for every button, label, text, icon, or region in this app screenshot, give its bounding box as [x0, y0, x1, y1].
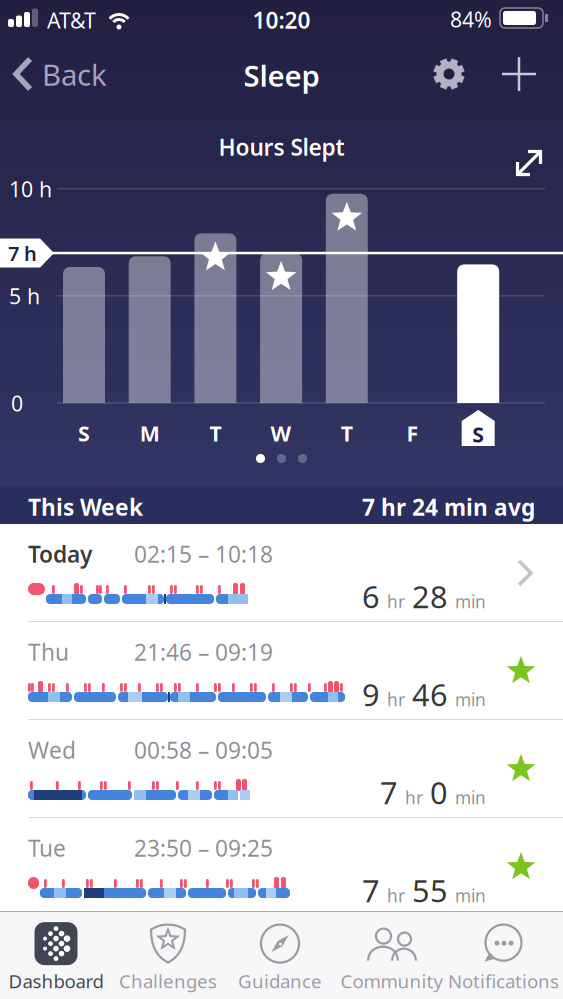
- staticText: 0: [11, 389, 23, 417]
- button[interactable]: Dashboard: [0, 916, 112, 998]
- staticText: Community: [340, 969, 443, 993]
- button[interactable]: Wed: [0, 720, 563, 818]
- staticText: M: [140, 419, 160, 447]
- staticText: min: [455, 688, 486, 711]
- button[interactable]: [497, 52, 541, 96]
- staticText: min: [455, 884, 486, 907]
- staticText: hr: [387, 884, 405, 907]
- button[interactable]: Guidance: [224, 916, 336, 998]
- staticText: T: [341, 419, 353, 447]
- staticText: 9: [362, 674, 380, 715]
- staticText: 21:46 – 09:19: [134, 637, 273, 667]
- staticText: 28: [412, 576, 448, 617]
- staticText: 00:58 – 09:05: [134, 735, 273, 765]
- button[interactable]: [427, 52, 471, 96]
- button[interactable]: Challenges: [112, 916, 224, 998]
- staticText: S: [78, 419, 90, 447]
- button[interactable]: Thu: [0, 622, 563, 720]
- staticText: Challenges: [119, 969, 217, 993]
- staticText: 0: [430, 772, 448, 813]
- staticText: Guidance: [238, 969, 322, 993]
- staticText: Thu: [28, 637, 69, 667]
- staticText: S: [472, 420, 484, 448]
- staticText: Hours Slept: [218, 132, 344, 162]
- staticText: W: [271, 419, 292, 447]
- button[interactable]: Back: [0, 40, 120, 108]
- staticText: 23:50 – 09:25: [134, 833, 273, 863]
- staticText: 46: [412, 674, 448, 715]
- staticText: hr: [387, 590, 405, 613]
- button[interactable]: Today: [0, 524, 563, 622]
- staticText: 6: [362, 576, 380, 617]
- staticText: Sleep: [243, 56, 319, 95]
- staticText: 7: [362, 870, 380, 911]
- staticText: Tue: [28, 833, 66, 863]
- staticText: This Week: [28, 492, 143, 522]
- staticText: Dashboard: [8, 969, 103, 993]
- button[interactable]: Community: [336, 916, 448, 998]
- staticText: min: [455, 786, 486, 809]
- staticText: hr: [387, 688, 405, 711]
- staticText: 10:20: [252, 5, 310, 35]
- staticText: AT&T: [47, 6, 96, 34]
- staticText: Notifications: [448, 969, 559, 993]
- staticText: Back: [42, 55, 107, 94]
- staticText: 84%: [450, 5, 492, 33]
- staticText: 55: [412, 870, 448, 911]
- staticText: 5 h: [9, 282, 40, 310]
- staticText: 7 h: [8, 240, 37, 267]
- staticText: Wed: [28, 735, 76, 765]
- staticText: 7: [380, 772, 398, 813]
- button[interactable]: [513, 147, 545, 179]
- staticText: min: [455, 590, 486, 613]
- button[interactable]: Notifications: [444, 916, 563, 998]
- button[interactable]: Tue: [0, 818, 563, 916]
- staticText: hr: [405, 786, 423, 809]
- staticText: Today: [28, 539, 92, 569]
- staticText: F: [406, 419, 418, 447]
- staticText: 10 h: [9, 175, 52, 203]
- staticText: 02:15 – 10:18: [134, 539, 273, 569]
- staticText: 7 hr 24 min avg: [362, 492, 535, 522]
- staticText: T: [209, 419, 221, 447]
